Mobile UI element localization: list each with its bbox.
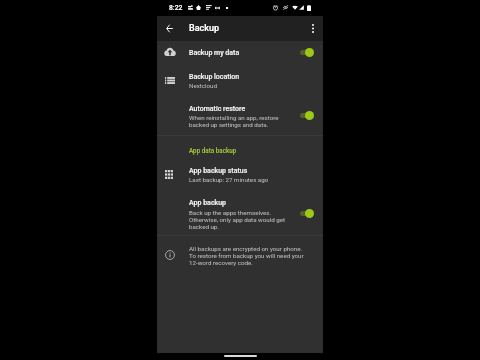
staticText: Nextcloud — [189, 82, 217, 89]
button[interactable]: App backup — [157, 193, 323, 232]
staticText: Backup — [189, 23, 219, 34]
button[interactable]: More options — [303, 16, 323, 41]
button[interactable]: Toggle — [300, 110, 318, 121]
staticText: App backup status — [189, 167, 248, 175]
staticText: Last backup: 27 minutes ago — [189, 176, 269, 183]
button[interactable]: App backup status — [157, 161, 323, 187]
staticText: App data backup — [189, 147, 237, 154]
staticText: 8:22 — [169, 4, 183, 12]
staticText: Automatic restore — [189, 105, 246, 113]
staticText: When reinstalling an app, restore backed… — [189, 114, 279, 128]
staticText: All backups are encrypted on your phone.… — [189, 245, 304, 266]
button[interactable]: Backup my data — [157, 43, 323, 62]
staticText: Back up the apps themselves. Otherwise, … — [189, 209, 285, 230]
staticText: Backup my data — [189, 49, 240, 57]
button[interactable]: App data backup — [157, 141, 323, 156]
staticText: App backup — [189, 199, 227, 207]
button[interactable]: Backup location — [157, 67, 323, 93]
button[interactable]: Navigate up — [159, 16, 180, 41]
staticText: Backup location — [189, 73, 240, 81]
button[interactable]: Automatic restore — [157, 99, 323, 132]
button[interactable]: Toggle — [300, 208, 318, 219]
button[interactable]: Toggle — [300, 47, 318, 58]
